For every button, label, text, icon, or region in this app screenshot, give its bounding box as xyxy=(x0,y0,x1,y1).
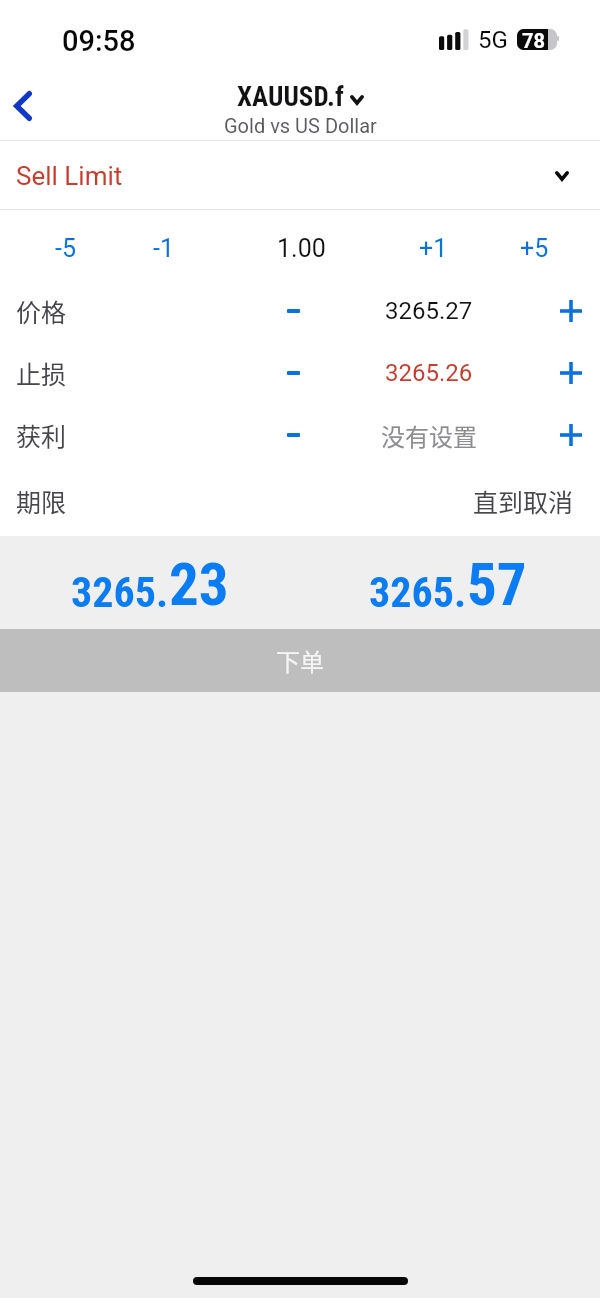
staticText: -1 xyxy=(153,234,174,263)
staticText: -5 xyxy=(55,234,76,263)
button[interactable]: 3265. xyxy=(338,536,558,629)
staticText: 直到取消 xyxy=(473,483,574,519)
button[interactable]: Sell Limit xyxy=(0,141,600,209)
button[interactable]: Decrease 获利 xyxy=(261,404,325,466)
staticText: 期限 xyxy=(16,483,67,519)
staticText: 3265.27 xyxy=(385,297,473,325)
staticText: 止损 xyxy=(16,355,67,391)
staticText: 价格 xyxy=(16,293,67,329)
staticText: 09:58 xyxy=(62,24,136,58)
staticText: 3265. xyxy=(71,568,169,617)
staticText: 1.00 xyxy=(277,234,326,263)
button[interactable]: 3265. xyxy=(40,536,260,629)
staticText: 5G xyxy=(478,26,508,54)
button[interactable]: Increase 价格 xyxy=(542,280,600,342)
staticText: XAUUSD.f xyxy=(237,81,344,113)
button[interactable]: 期限 xyxy=(0,470,600,532)
button[interactable]: Decrease 止损 xyxy=(261,342,325,404)
staticText: 57 xyxy=(467,550,527,619)
staticText: 3265. xyxy=(369,568,467,617)
staticText: +5 xyxy=(520,234,549,263)
staticText: 没有设置 xyxy=(381,418,477,453)
button[interactable]: +1 xyxy=(388,210,478,286)
staticText: Sell Limit xyxy=(16,161,123,191)
button[interactable]: 1.00 xyxy=(256,210,346,286)
staticText: 下单 xyxy=(276,643,324,678)
button[interactable]: +5 xyxy=(489,210,579,286)
staticText: +1 xyxy=(419,234,448,263)
button[interactable]: -1 xyxy=(118,210,208,286)
staticText: 23 xyxy=(169,550,229,619)
button[interactable]: 下单 xyxy=(0,629,600,692)
staticText: 3265.26 xyxy=(385,359,473,387)
button[interactable]: Decrease 价格 xyxy=(261,280,325,342)
button[interactable]: Increase 止损 xyxy=(542,342,600,404)
staticText: 获利 xyxy=(16,417,67,453)
button[interactable]: -5 xyxy=(20,210,110,286)
staticText: Gold vs US Dollar xyxy=(224,114,377,137)
button[interactable]: Increase 获利 xyxy=(542,404,600,466)
button[interactable]: Back xyxy=(0,76,56,136)
staticText: 78 xyxy=(518,29,549,50)
